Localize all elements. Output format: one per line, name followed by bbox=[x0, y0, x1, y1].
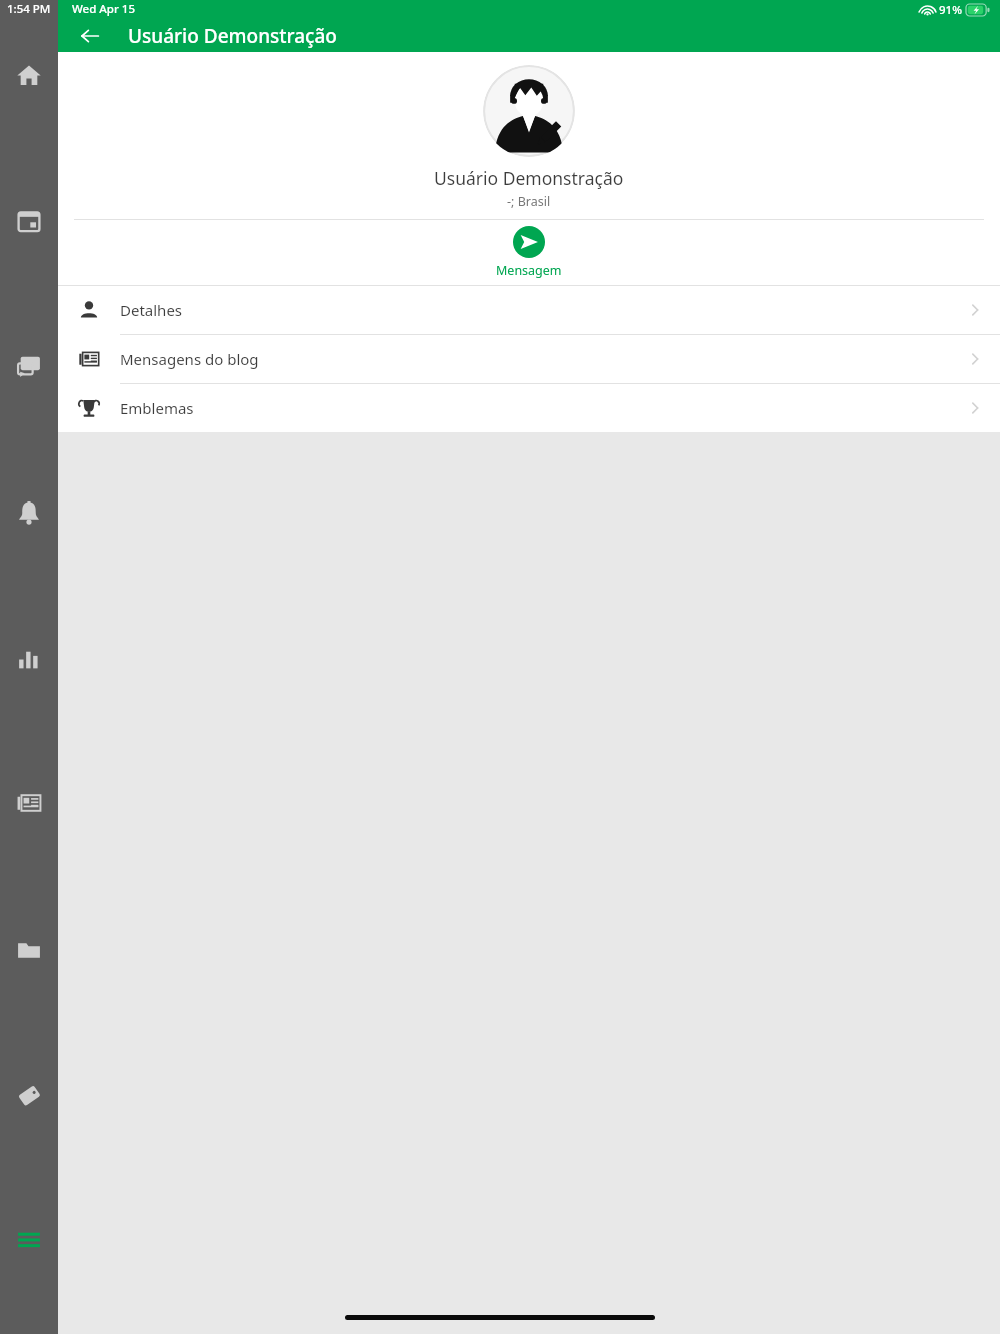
staticText: Usuário Demonstração bbox=[434, 166, 624, 190]
staticText: Mensagens do blog bbox=[120, 349, 964, 369]
staticText: 91% bbox=[939, 2, 962, 18]
button[interactable]: Home bbox=[0, 55, 58, 95]
button[interactable]: Tags bbox=[0, 1076, 58, 1116]
button[interactable]: Menu bbox=[0, 1222, 58, 1258]
staticText: Emblemas bbox=[120, 398, 964, 418]
button[interactable]: Edit profile picture bbox=[483, 65, 575, 157]
button[interactable]: Emblemas bbox=[58, 384, 1000, 432]
button[interactable]: Messages bbox=[0, 346, 58, 386]
staticText: 1:54 PM bbox=[7, 1, 51, 17]
staticText: Mensagem bbox=[496, 262, 562, 279]
button[interactable]: Files bbox=[0, 930, 58, 970]
button[interactable]: Blog bbox=[0, 783, 58, 823]
button[interactable]: Back bbox=[76, 22, 104, 50]
button[interactable]: Reports bbox=[0, 639, 58, 679]
button[interactable]: Detalhes bbox=[58, 286, 1000, 334]
staticText: Detalhes bbox=[120, 300, 964, 320]
button[interactable]: Mensagens do blog bbox=[58, 335, 1000, 383]
staticText: Wed Apr 15 bbox=[72, 1, 135, 17]
button[interactable]: Mensagem bbox=[58, 220, 1000, 285]
staticText: -; Brasil bbox=[507, 193, 551, 210]
button[interactable]: Notifications bbox=[0, 493, 58, 533]
button[interactable]: Calendar bbox=[0, 201, 58, 241]
staticText: Usuário Demonstração bbox=[128, 23, 337, 49]
